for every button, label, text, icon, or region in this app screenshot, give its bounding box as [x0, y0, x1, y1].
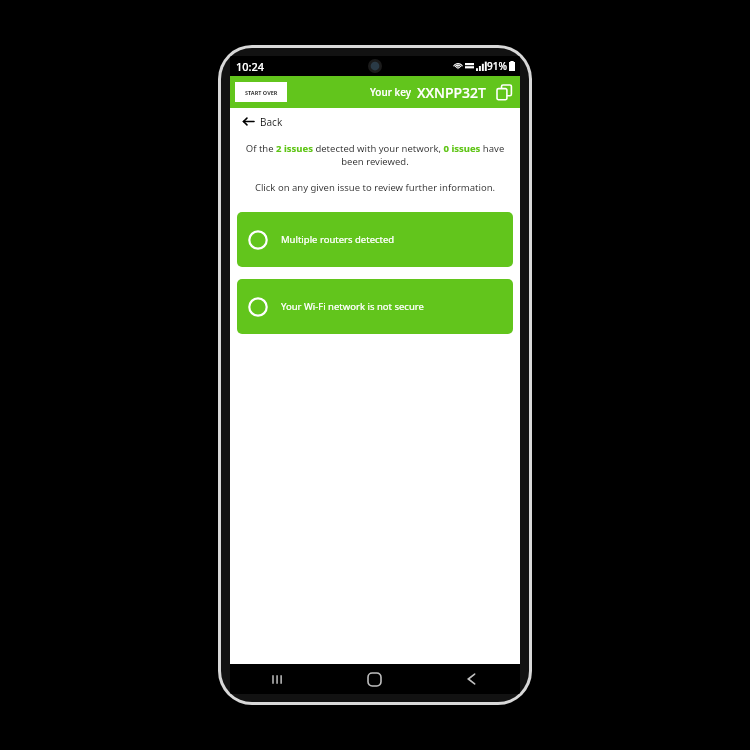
button[interactable]: Your Wi-Fi network is not secure: [237, 279, 513, 334]
staticText: Multiple routers detected: [281, 233, 395, 246]
button[interactable]: Back: [230, 108, 520, 135]
staticText: XXNPP32T: [417, 83, 486, 102]
staticText: 10:24: [236, 59, 265, 74]
staticText: Click on any given issue to review furth…: [238, 181, 512, 194]
staticText: 91%: [487, 59, 507, 73]
staticText: Back: [260, 115, 283, 129]
staticText: START OVER: [245, 89, 278, 96]
button[interactable]: Copy key: [493, 81, 515, 103]
staticText: Of the 2 issues detected with your netwo…: [238, 142, 512, 168]
button[interactable]: Multiple routers detected: [237, 212, 513, 267]
button[interactable]: Home: [326, 664, 423, 694]
button[interactable]: Recent apps: [230, 664, 326, 694]
staticText: Your key: [370, 85, 411, 99]
staticText: Your Wi-Fi network is not secure: [281, 300, 424, 313]
button[interactable]: Back: [423, 664, 520, 694]
button[interactable]: START OVER: [235, 82, 287, 102]
